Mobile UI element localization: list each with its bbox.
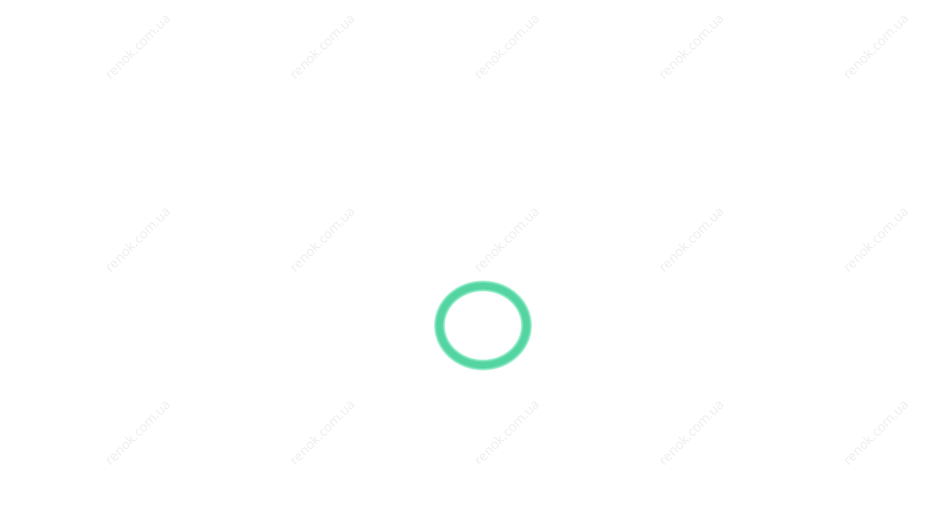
button[interactable]: Product photo: green rubber O-ring seal	[0, 0, 949, 506]
